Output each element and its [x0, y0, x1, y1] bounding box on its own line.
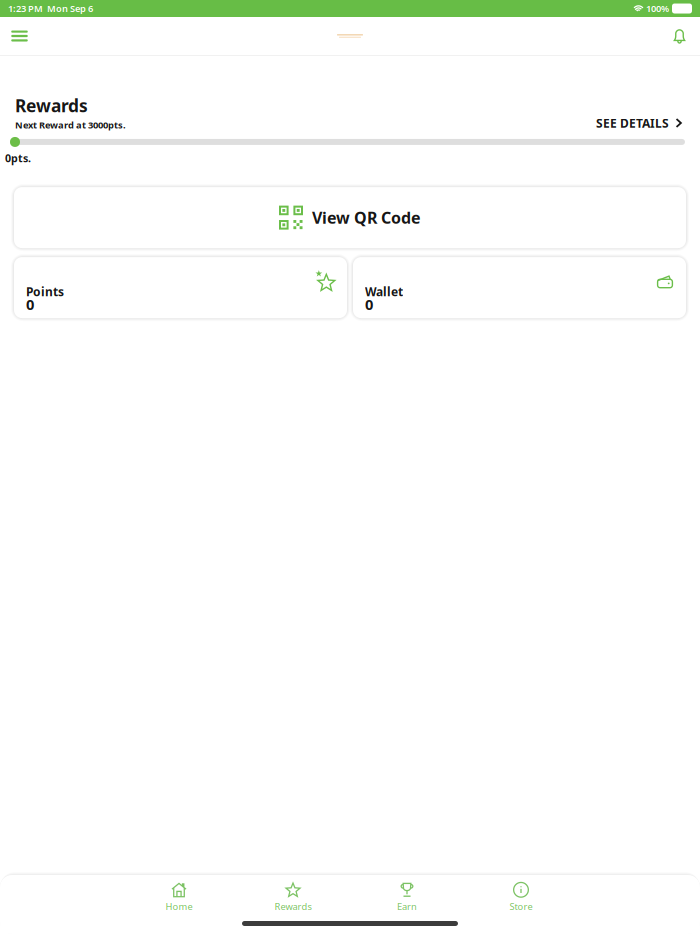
staticText: Mon Sep 6 — [43, 2, 93, 15]
button[interactable]: SEE DETAILS — [596, 115, 684, 131]
button[interactable]: Menu — [2, 21, 37, 50]
staticText: Points — [26, 284, 64, 300]
button[interactable]: Earn — [350, 883, 464, 911]
staticText: Home — [165, 900, 192, 913]
staticText: 0pts. — [5, 151, 31, 165]
button[interactable]: Notifications — [663, 19, 696, 52]
staticText: Earn — [397, 900, 417, 913]
button[interactable]: View QR Code — [11, 184, 689, 251]
staticText: Rewards — [274, 900, 311, 913]
staticText: 100% — [644, 2, 669, 15]
staticText: Wallet — [365, 284, 403, 300]
staticText: View QR Code — [312, 207, 421, 228]
staticText: 0 — [26, 295, 34, 314]
staticText: Rewards — [15, 94, 88, 117]
button[interactable]: Rewards — [236, 883, 350, 911]
button[interactable]: Store — [464, 883, 578, 911]
button[interactable]: Points — [11, 254, 350, 321]
button[interactable]: Wallet — [350, 254, 689, 321]
staticText: Store — [509, 900, 532, 913]
staticText: 0 — [365, 295, 373, 314]
staticText: 1:23 PM — [8, 2, 43, 15]
button[interactable]: Home — [122, 883, 236, 911]
staticText: Next Reward at 3000pts. — [15, 119, 126, 131]
staticText: SEE DETAILS — [596, 115, 669, 131]
